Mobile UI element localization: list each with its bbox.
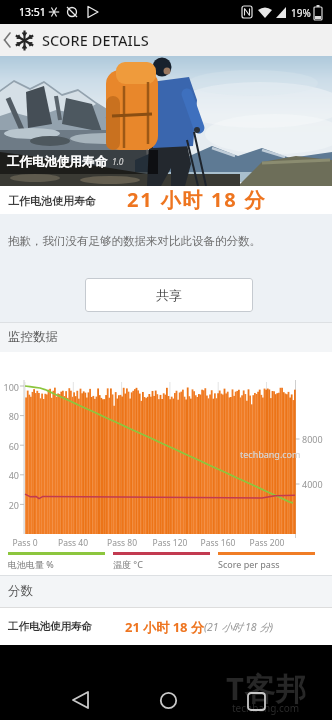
staticText: 80 [0, 410, 19, 422]
staticText: 工作电池使用寿命 [8, 194, 96, 208]
staticText: Pass 0 [3, 537, 47, 549]
staticText: 20 [0, 499, 19, 511]
button[interactable] [60, 680, 100, 720]
button[interactable]: SCORE DETAILS [0, 24, 149, 56]
staticText: 21 小时 18 分 [127, 186, 267, 213]
staticText: 21 小时 18 分 [125, 618, 204, 636]
staticText: 13:51 [19, 5, 46, 19]
staticText: Pass 120 [148, 537, 192, 549]
staticText: 共享 [156, 287, 182, 303]
staticText: 抱歉，我们没有足够的数据来对比此设备的分数。 [8, 234, 261, 248]
staticText: Pass 200 [245, 537, 289, 549]
button[interactable]: 工作电池使用寿命 [0, 607, 332, 645]
staticText: 8000 [302, 433, 323, 445]
staticText: 工作电池使用寿命 [7, 154, 107, 170]
button[interactable] [148, 680, 188, 720]
staticText: 监控数据 [8, 329, 58, 345]
staticText: (21 小时 18 分) [204, 620, 273, 634]
staticText: Pass 160 [196, 537, 240, 549]
staticText: 4000 [302, 478, 323, 490]
staticText: 19% [291, 6, 311, 20]
staticText: 分数 [8, 583, 33, 599]
staticText: techbang.com [240, 448, 301, 460]
button[interactable]: 共享 [85, 278, 253, 312]
staticText: 电池电量 % [8, 558, 54, 570]
staticText: 60 [0, 440, 19, 452]
staticText: SCORE DETAILS [42, 30, 149, 50]
staticText: 工作电池使用寿命 [8, 620, 92, 633]
staticText: techbang.com [232, 701, 300, 715]
staticText: 1.0 [112, 156, 124, 168]
staticText: Score per pass [218, 558, 280, 570]
staticText: Pass 80 [100, 537, 144, 549]
staticText: 温度 °C [113, 558, 143, 570]
staticText: 100 [0, 381, 19, 393]
button[interactable] [232, 680, 272, 720]
staticText: T客邦 [226, 667, 306, 709]
staticText: 40 [0, 469, 19, 481]
staticText: Pass 40 [51, 537, 95, 549]
